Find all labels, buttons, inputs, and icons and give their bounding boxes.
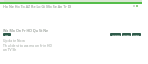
button[interactable]: Movies — [110, 33, 121, 36]
staticText: Movies — [112, 33, 120, 36]
button[interactable]: Login — [132, 33, 141, 36]
button[interactable]: Series — [122, 33, 131, 36]
staticText: an TV Sh — [3, 47, 17, 51]
button[interactable]: Ho Ne Ho To AZ Re Lo Gi Mo Se An Tr Dl — [3, 4, 72, 9]
staticText: Series — [123, 33, 130, 36]
staticText: Go — [5, 33, 9, 36]
staticText: Th ul de st to wa mo on fr in HD — [3, 43, 52, 47]
staticText: Up da te No w — [3, 38, 25, 42]
staticText: Ho Ne Ho To AZ Re Lo Gi Mo Se An Tr Dl — [3, 4, 72, 9]
staticText: Wa Mo On Fr HD Qu St Ne — [3, 28, 49, 33]
button[interactable]: Go — [3, 33, 11, 36]
staticText: Login — [133, 33, 140, 36]
